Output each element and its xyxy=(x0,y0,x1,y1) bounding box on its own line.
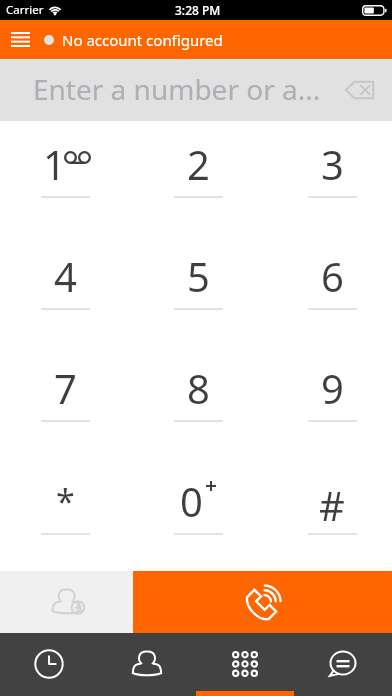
staticText: # xyxy=(319,478,345,524)
button[interactable]: 9 xyxy=(262,345,392,458)
button[interactable]: Call xyxy=(133,571,392,633)
staticText: 6 xyxy=(321,249,344,295)
staticText: * xyxy=(56,478,75,524)
staticText: 7 xyxy=(54,361,77,407)
staticText: No account configured xyxy=(62,30,223,50)
button[interactable]: 5 xyxy=(130,233,262,345)
staticText: 3 xyxy=(321,137,344,183)
button[interactable]: Recent calls xyxy=(0,633,98,696)
staticText: 4 xyxy=(54,249,77,295)
button[interactable]: Open navigation menu xyxy=(0,20,40,59)
button[interactable]: * xyxy=(0,458,130,571)
button[interactable]: Backspace xyxy=(330,59,392,121)
button[interactable]: 8 xyxy=(130,345,262,458)
button[interactable]: Messages xyxy=(294,633,392,696)
staticText: Enter a number or a... xyxy=(33,70,321,108)
button[interactable]: 3 xyxy=(262,121,392,233)
button[interactable]: # xyxy=(262,458,392,571)
button[interactable]: Contacts xyxy=(98,633,196,696)
staticText: 5 xyxy=(187,249,210,295)
button[interactable]: 1 xyxy=(0,121,130,233)
staticText: 2 xyxy=(187,137,210,183)
button[interactable]: 2 xyxy=(130,121,262,233)
button[interactable]: 0 xyxy=(130,458,262,571)
staticText: 9 xyxy=(321,361,344,407)
button[interactable]: 7 xyxy=(0,345,130,458)
button[interactable]: Add contact xyxy=(0,571,133,633)
staticText: 1 xyxy=(43,137,66,183)
button[interactable]: Dialpad xyxy=(196,633,294,696)
staticText: 3:28 PM xyxy=(175,2,221,18)
staticText: 0 xyxy=(180,474,203,520)
button[interactable]: 4 xyxy=(0,233,130,345)
button[interactable]: 6 xyxy=(262,233,392,345)
staticText: 8 xyxy=(187,361,210,407)
staticText: Carrier xyxy=(6,2,44,18)
